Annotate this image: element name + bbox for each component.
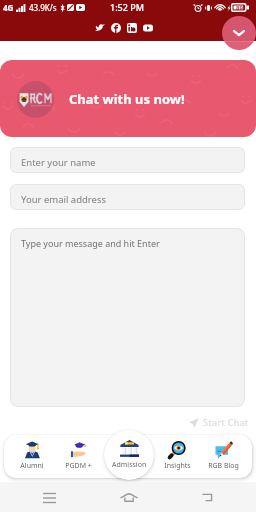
button[interactable]: YouTube <box>142 22 153 33</box>
button[interactable]: Facebook <box>110 22 121 33</box>
button[interactable]: Alumni <box>8 435 56 478</box>
button[interactable]: Insights <box>153 435 201 478</box>
staticText: Alumni <box>20 461 44 471</box>
button[interactable]: Recent apps <box>36 485 63 509</box>
staticText: Start Chat <box>203 416 249 429</box>
button[interactable]: Twitter <box>94 22 105 33</box>
button[interactable]: Enter your name <box>10 147 245 173</box>
button[interactable]: LinkedIn <box>126 22 137 33</box>
button[interactable]: Home <box>115 485 142 509</box>
button[interactable]: RGB Blog <box>199 435 247 478</box>
staticText: PGDM + <box>65 461 92 471</box>
staticText: RGB Blog <box>208 461 239 471</box>
button[interactable]: Your email address <box>10 184 245 210</box>
staticText: 4G <box>3 2 14 13</box>
button[interactable]: Collapse chat <box>222 16 256 50</box>
staticText: Type your message and hit Enter <box>21 237 160 249</box>
staticText: 1:52 PM <box>110 1 144 13</box>
staticText: Admission <box>112 460 147 470</box>
button[interactable]: Admission <box>104 430 154 480</box>
button[interactable]: PGDM + <box>54 435 102 478</box>
staticText: Insights <box>164 461 191 471</box>
staticText: Your email address <box>21 193 107 206</box>
staticText: 89 <box>236 4 243 12</box>
staticText: 43.9K/s <box>29 2 57 13</box>
button[interactable]: Back <box>193 485 220 509</box>
button[interactable]: Start Chat <box>189 416 249 429</box>
button[interactable]: Type your message and hit Enter <box>10 228 245 407</box>
staticText: Enter your name <box>21 156 96 169</box>
staticText: Chat with us now! <box>69 90 185 108</box>
